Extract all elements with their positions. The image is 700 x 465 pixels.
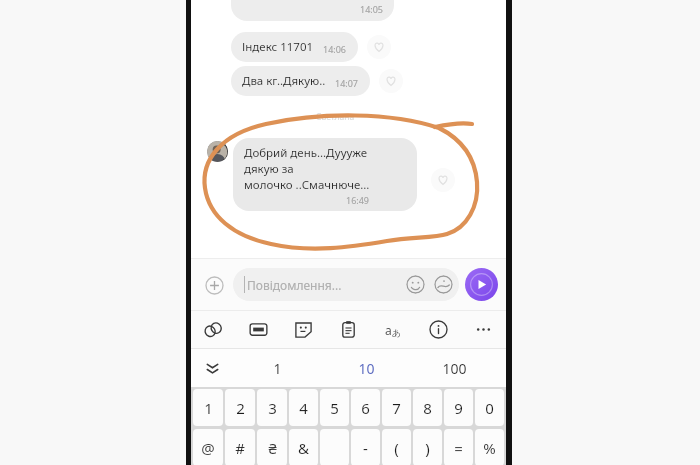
- button[interactable]: 4: [289, 389, 318, 426]
- button[interactable]: 100: [410, 349, 498, 387]
- button[interactable]: 0: [475, 389, 504, 426]
- button[interactable]: Expand toolbar: [191, 349, 233, 387]
- staticText: 5: [330, 398, 339, 418]
- button[interactable]: React with heart: [367, 35, 391, 59]
- button[interactable]: React with heart: [431, 168, 455, 192]
- staticText: 16:49: [346, 194, 370, 206]
- button[interactable]: Дем`янчук Неля Іванівна.: [231, 0, 394, 21]
- staticText: ₴: [268, 438, 277, 458]
- staticText: a: [385, 322, 392, 338]
- button[interactable]: Emoji: [406, 275, 425, 294]
- button[interactable]: =: [444, 429, 473, 465]
- button[interactable]: Добрий день…Дуууже: [233, 138, 417, 211]
- button[interactable]: Send: [465, 268, 498, 301]
- staticText: 14:07: [335, 77, 359, 89]
- button[interactable]: @: [193, 429, 223, 465]
- button[interactable]: %: [475, 429, 504, 465]
- button[interactable]: Stickers: [434, 275, 453, 294]
- staticText: 14:05: [360, 3, 384, 15]
- button[interactable]: &: [289, 429, 318, 465]
- staticText: Два кг..Дякую..: [242, 73, 326, 89]
- button[interactable]: 5: [320, 389, 349, 426]
- staticText: Повідомлення...: [247, 277, 342, 293]
- button[interactable]: 2: [225, 389, 255, 426]
- button[interactable]: Translate: [371, 311, 416, 348]
- button[interactable]: 8: [413, 389, 442, 426]
- staticText: 3: [268, 398, 277, 418]
- button[interactable]: Індекс 11701: [231, 32, 358, 62]
- button[interactable]: -: [351, 429, 380, 465]
- button[interactable]: ): [413, 429, 442, 465]
- staticText: -: [363, 438, 368, 458]
- staticText: 1: [273, 359, 282, 378]
- button[interactable]: React with heart: [379, 69, 403, 93]
- button[interactable]: ₴: [257, 429, 287, 465]
- button[interactable]: (: [382, 429, 411, 465]
- button[interactable]: 6: [351, 389, 380, 426]
- staticText: 9: [454, 398, 463, 418]
- staticText: Добрий день…Дуууже: [244, 145, 368, 161]
- staticText: 8: [423, 398, 432, 418]
- staticText: あ: [392, 327, 402, 338]
- button[interactable]: 7: [382, 389, 411, 426]
- button[interactable]: 3: [257, 389, 287, 426]
- staticText: 2: [236, 398, 245, 418]
- button[interactable]: Повідомлення...: [233, 268, 459, 301]
- staticText: Індекс 11701: [242, 39, 314, 55]
- staticText: (: [394, 438, 399, 458]
- staticText: 0: [485, 398, 494, 418]
- staticText: 100: [442, 359, 467, 378]
- staticText: =: [454, 438, 463, 458]
- button[interactable]: 1: [193, 389, 223, 426]
- button[interactable]: Avatars: [191, 311, 236, 348]
- button[interactable]: #: [225, 429, 255, 465]
- button[interactable]: Sticker: [281, 311, 326, 348]
- button[interactable]: 1: [233, 349, 322, 387]
- staticText: 7: [392, 398, 401, 418]
- staticText: 6: [361, 398, 370, 418]
- staticText: #: [235, 438, 245, 458]
- staticText: 4: [299, 398, 308, 418]
- staticText: 14:06: [323, 43, 347, 55]
- button[interactable]: Два кг..Дякую..: [231, 66, 370, 96]
- button[interactable]: More: [461, 311, 506, 348]
- staticText: Светлана: [316, 111, 355, 123]
- staticText: &: [298, 438, 309, 458]
- staticText: 1: [204, 398, 213, 418]
- staticText: %: [483, 438, 496, 458]
- staticText: @: [201, 438, 215, 458]
- staticText: молочко ..Смачнюче…: [244, 177, 370, 193]
- button[interactable]: 9: [444, 389, 473, 426]
- staticText: дякую за: [244, 161, 294, 177]
- button[interactable]: Add attachment: [199, 270, 229, 300]
- button[interactable]: Clipboard: [326, 311, 371, 348]
- button[interactable]: GIF: [236, 311, 281, 348]
- staticText: 10: [358, 359, 375, 378]
- button[interactable]: Profile photo: [207, 141, 228, 162]
- button[interactable]: Info: [416, 311, 461, 348]
- button[interactable]: 10: [322, 349, 410, 387]
- staticText: ): [425, 438, 430, 458]
